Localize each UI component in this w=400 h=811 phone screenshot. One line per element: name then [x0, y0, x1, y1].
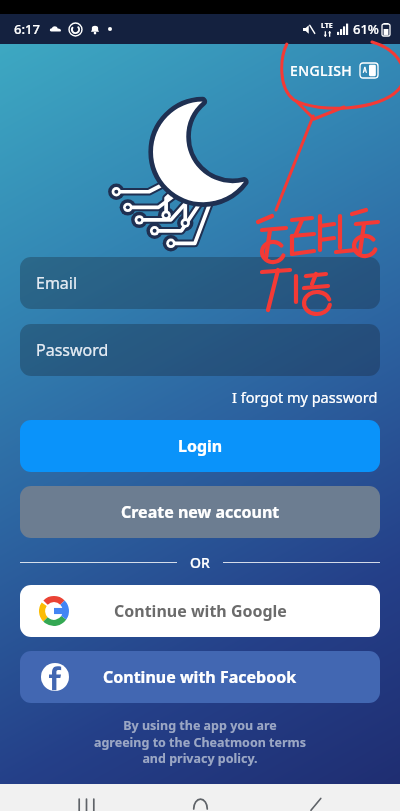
- staticText: ENGLISH: [290, 61, 353, 80]
- staticText: I forgot my password: [232, 387, 378, 407]
- button[interactable]: Password: [20, 324, 380, 376]
- staticText: 6:17: [14, 20, 40, 38]
- staticText: 61%: [353, 20, 379, 38]
- staticText: Password: [36, 339, 109, 361]
- button[interactable]: I forgot my password: [230, 385, 380, 409]
- button[interactable]: Continue with Facebook: [20, 651, 380, 703]
- button[interactable]: Login: [20, 420, 380, 472]
- staticText: LTE: [321, 21, 333, 31]
- button[interactable]: Create new account: [20, 486, 380, 538]
- button[interactable]: Back: [286, 784, 344, 811]
- staticText: Login: [178, 435, 223, 457]
- button[interactable]: Continue with Google: [20, 585, 380, 637]
- staticText: OR: [190, 553, 210, 572]
- staticText: Continue with Google: [114, 600, 287, 622]
- button[interactable]: ENGLISH: [286, 58, 382, 83]
- button[interactable]: Recent apps: [57, 784, 115, 811]
- button[interactable]: Home: [171, 784, 229, 811]
- button[interactable]: Email: [20, 257, 380, 309]
- staticText: By using the app you are agreeing to the…: [20, 717, 380, 766]
- staticText: Create new account: [121, 501, 280, 523]
- staticText: Email: [36, 272, 78, 294]
- staticText: Continue with Facebook: [103, 666, 297, 688]
